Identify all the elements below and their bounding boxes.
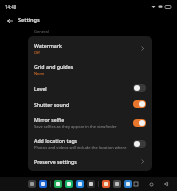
button[interactable]: App — [102, 180, 110, 188]
button[interactable]: App — [65, 180, 73, 188]
staticText: Photos and videos will include the locat… — [34, 145, 129, 150]
button[interactable]: Toggle off — [133, 140, 146, 148]
staticText: Level — [34, 85, 47, 92]
button[interactable]: App — [124, 180, 132, 188]
button[interactable]: Add location tags — [28, 133, 152, 154]
button[interactable]: App — [87, 180, 95, 188]
staticText: General — [34, 29, 49, 34]
button[interactable]: Preserve settings — [28, 154, 152, 169]
button[interactable]: App — [54, 180, 62, 188]
button[interactable]: App — [28, 180, 36, 188]
button[interactable]: Home — [147, 180, 155, 188]
button[interactable]: Recents — [132, 180, 140, 188]
staticText: Settings — [18, 16, 40, 24]
staticText: Off — [34, 50, 40, 55]
staticText: Watermark — [34, 42, 62, 49]
button[interactable]: Mirror selfie — [28, 112, 152, 133]
staticText: Add location tags — [34, 137, 78, 144]
button[interactable]: Back — [162, 180, 169, 188]
staticText: 14:48 — [5, 4, 17, 10]
button[interactable]: Back — [4, 15, 15, 26]
staticText: Mirror selfie — [34, 116, 65, 123]
staticText: Grid and guides — [34, 63, 74, 70]
staticText: None — [34, 71, 45, 76]
button[interactable]: Watermark — [28, 38, 152, 59]
button[interactable]: App — [76, 180, 84, 188]
button[interactable]: Level — [28, 80, 152, 96]
button[interactable]: Toggle on — [133, 119, 146, 127]
staticText: Shutter sound — [34, 101, 70, 108]
staticText: Preserve settings — [34, 158, 77, 165]
button[interactable]: Toggle off — [133, 84, 146, 92]
button[interactable]: Grid and guides — [28, 59, 152, 80]
button[interactable]: Shutter sound — [28, 96, 152, 112]
button[interactable]: App — [113, 180, 121, 188]
button[interactable]: Toggle on — [133, 100, 146, 108]
button[interactable]: App — [39, 180, 47, 188]
staticText: Save selfies as they appear in the viewf… — [34, 124, 117, 129]
